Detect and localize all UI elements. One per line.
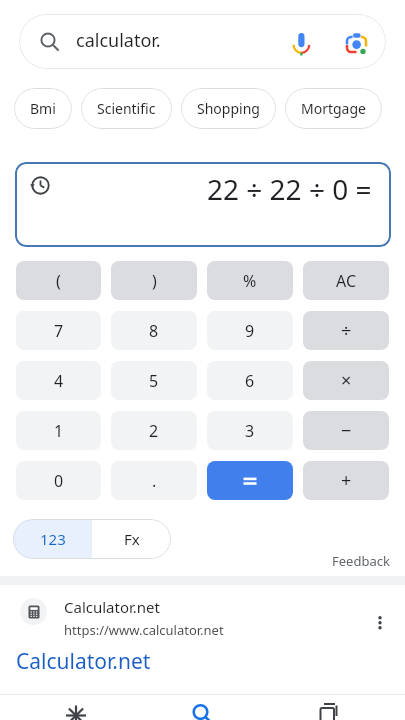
staticText: 4	[54, 370, 64, 392]
staticText: 9	[245, 320, 255, 342]
button[interactable]: AC	[303, 261, 389, 300]
staticText: Shopping	[197, 99, 260, 118]
staticText: +	[341, 468, 352, 493]
button[interactable]: Calculator.net	[16, 647, 151, 676]
button[interactable]: )	[111, 261, 197, 300]
button[interactable]	[191, 702, 213, 720]
button[interactable]: 0	[16, 461, 101, 500]
button[interactable]: +	[303, 461, 389, 500]
button[interactable]: Scientific	[81, 88, 172, 129]
button[interactable]: 9	[207, 311, 293, 350]
button[interactable]: Mortgage	[285, 88, 382, 129]
staticText: AC	[336, 270, 357, 292]
button[interactable]: Calculator.net	[0, 590, 405, 640]
button[interactable]: 2	[111, 411, 197, 450]
staticText: Fx	[124, 529, 140, 549]
staticText: −	[341, 418, 352, 443]
button[interactable]: 7	[16, 311, 101, 350]
staticText: Bmi	[30, 99, 56, 118]
staticText: 1	[54, 420, 64, 442]
staticText: 7	[54, 320, 64, 342]
staticText: 2	[149, 420, 159, 442]
button[interactable]: ×	[303, 361, 389, 400]
button[interactable]: .	[111, 461, 197, 500]
staticText: calculator.	[76, 28, 161, 53]
button[interactable]: Fx	[92, 519, 171, 559]
button[interactable]: Bmi	[14, 88, 72, 129]
button[interactable]	[65, 703, 87, 720]
button[interactable]: 1	[16, 411, 101, 450]
button[interactable]: (	[16, 261, 101, 300]
button[interactable]: calculator.	[19, 14, 386, 69]
staticText: 5	[149, 370, 159, 392]
staticText: Mortgage	[301, 99, 366, 118]
staticText: 8	[149, 320, 159, 342]
staticText: ×	[341, 368, 352, 393]
staticText: Calculator.net	[64, 597, 160, 617]
staticText: 22 ÷ 22 ÷ 0 =	[207, 170, 372, 208]
staticText: %	[243, 270, 257, 292]
button[interactable]: 123	[13, 519, 92, 559]
staticText: )	[152, 270, 157, 292]
button[interactable]: −	[303, 411, 389, 450]
button[interactable]: %	[207, 261, 293, 300]
button[interactable]: 5	[111, 361, 197, 400]
staticText: 6	[245, 370, 255, 392]
button[interactable]	[316, 700, 340, 720]
button[interactable]: 22 ÷ 22 ÷ 0 =	[15, 162, 391, 247]
staticText: https://www.calculator.net	[64, 621, 224, 639]
button[interactable]: Feedback	[332, 552, 390, 570]
staticText: 0	[54, 470, 64, 492]
staticText: 3	[245, 420, 255, 442]
staticText: 123	[40, 529, 66, 549]
button[interactable]	[207, 461, 293, 500]
button[interactable]: 6	[207, 361, 293, 400]
button[interactable]: ÷	[303, 311, 389, 350]
staticText: Scientific	[97, 99, 156, 118]
staticText: (	[56, 270, 61, 292]
staticText: ÷	[341, 318, 352, 343]
button[interactable]: 8	[111, 311, 197, 350]
button[interactable]: 3	[207, 411, 293, 450]
button[interactable]: 4	[16, 361, 101, 400]
staticText: .	[152, 470, 157, 492]
button[interactable]: Shopping	[181, 88, 276, 129]
